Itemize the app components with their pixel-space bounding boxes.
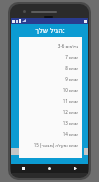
- button[interactable]: 9 שנים: [23, 73, 78, 84]
- button[interactable]: 12 שנים: [23, 106, 78, 117]
- staticText: 15 שנים ומעלה (מבוגר): [33, 142, 78, 148]
- button[interactable]: 11 שנים: [23, 95, 78, 106]
- button[interactable]: Recents: [62, 164, 88, 173]
- staticText: 10 שנים: [62, 87, 78, 93]
- staticText: 13 שנים: [62, 120, 78, 126]
- button[interactable]: 15 שנים ומעלה (מבוגר): [23, 139, 78, 150]
- button[interactable]: Cancel: [11, 148, 22, 155]
- button[interactable]: 13 שנים: [23, 117, 78, 128]
- staticText: 9 שנים: [65, 76, 78, 82]
- button[interactable]: גילאים 3-6: [23, 40, 78, 51]
- staticText: הגיל שלך:: [35, 26, 65, 36]
- button[interactable]: 10 שנים: [23, 84, 78, 95]
- staticText: 11 שנים: [62, 98, 78, 104]
- staticText: 7 שנים: [65, 54, 78, 60]
- button[interactable]: Home: [36, 164, 62, 173]
- button[interactable]: 8 שנים: [23, 62, 78, 73]
- staticText: 8 שנים: [65, 65, 78, 71]
- staticText: 14 שנים: [62, 131, 78, 137]
- button[interactable]: Back: [11, 164, 36, 173]
- button[interactable]: 14 שנים: [23, 128, 78, 139]
- staticText: 12 שנים: [62, 109, 78, 115]
- staticText: גילאים 3-6: [57, 43, 78, 49]
- button[interactable]: 7 שנים: [23, 51, 78, 62]
